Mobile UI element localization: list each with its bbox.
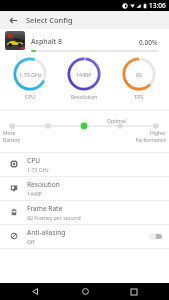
staticText: Higher Performance	[124, 130, 166, 143]
button[interactable]: Anti-aliasing	[0, 224, 169, 248]
button[interactable]: CPU	[0, 152, 169, 176]
staticText: 13:06	[149, 1, 166, 10]
staticText: 1.73 GHz	[27, 166, 49, 173]
button[interactable]: Home	[70, 283, 100, 300]
staticText: 0.00%	[139, 38, 158, 47]
button[interactable]: Back	[0, 11, 26, 29]
staticText: Anti-aliasing	[27, 228, 66, 237]
staticText: FPS	[112, 93, 166, 100]
staticText: Select Config	[26, 15, 73, 25]
staticText: More Battery	[3, 130, 21, 143]
button[interactable]: Anti-aliasing toggle	[146, 230, 164, 242]
staticText: Resolution	[27, 180, 60, 189]
staticText: Off	[27, 238, 35, 245]
staticText: CPU	[3, 93, 57, 100]
button[interactable]: Back	[20, 283, 50, 300]
button[interactable]: Recent apps	[119, 283, 149, 300]
staticText: Optimal	[107, 118, 126, 125]
staticText: 1440P	[76, 71, 92, 78]
button[interactable]: Frame Rate	[0, 200, 169, 224]
button[interactable]: Resolution	[0, 176, 169, 200]
staticText: 1440P	[27, 190, 43, 197]
staticText: Resolution	[57, 93, 111, 100]
staticText: 1.73 GHz	[19, 71, 42, 78]
staticText: 60	[136, 71, 143, 78]
staticText: CPU	[27, 156, 40, 165]
staticText: Asphalt 8	[31, 37, 63, 47]
staticText: Frame Rate	[27, 204, 63, 213]
staticText: 60 Frames per second	[27, 214, 81, 221]
